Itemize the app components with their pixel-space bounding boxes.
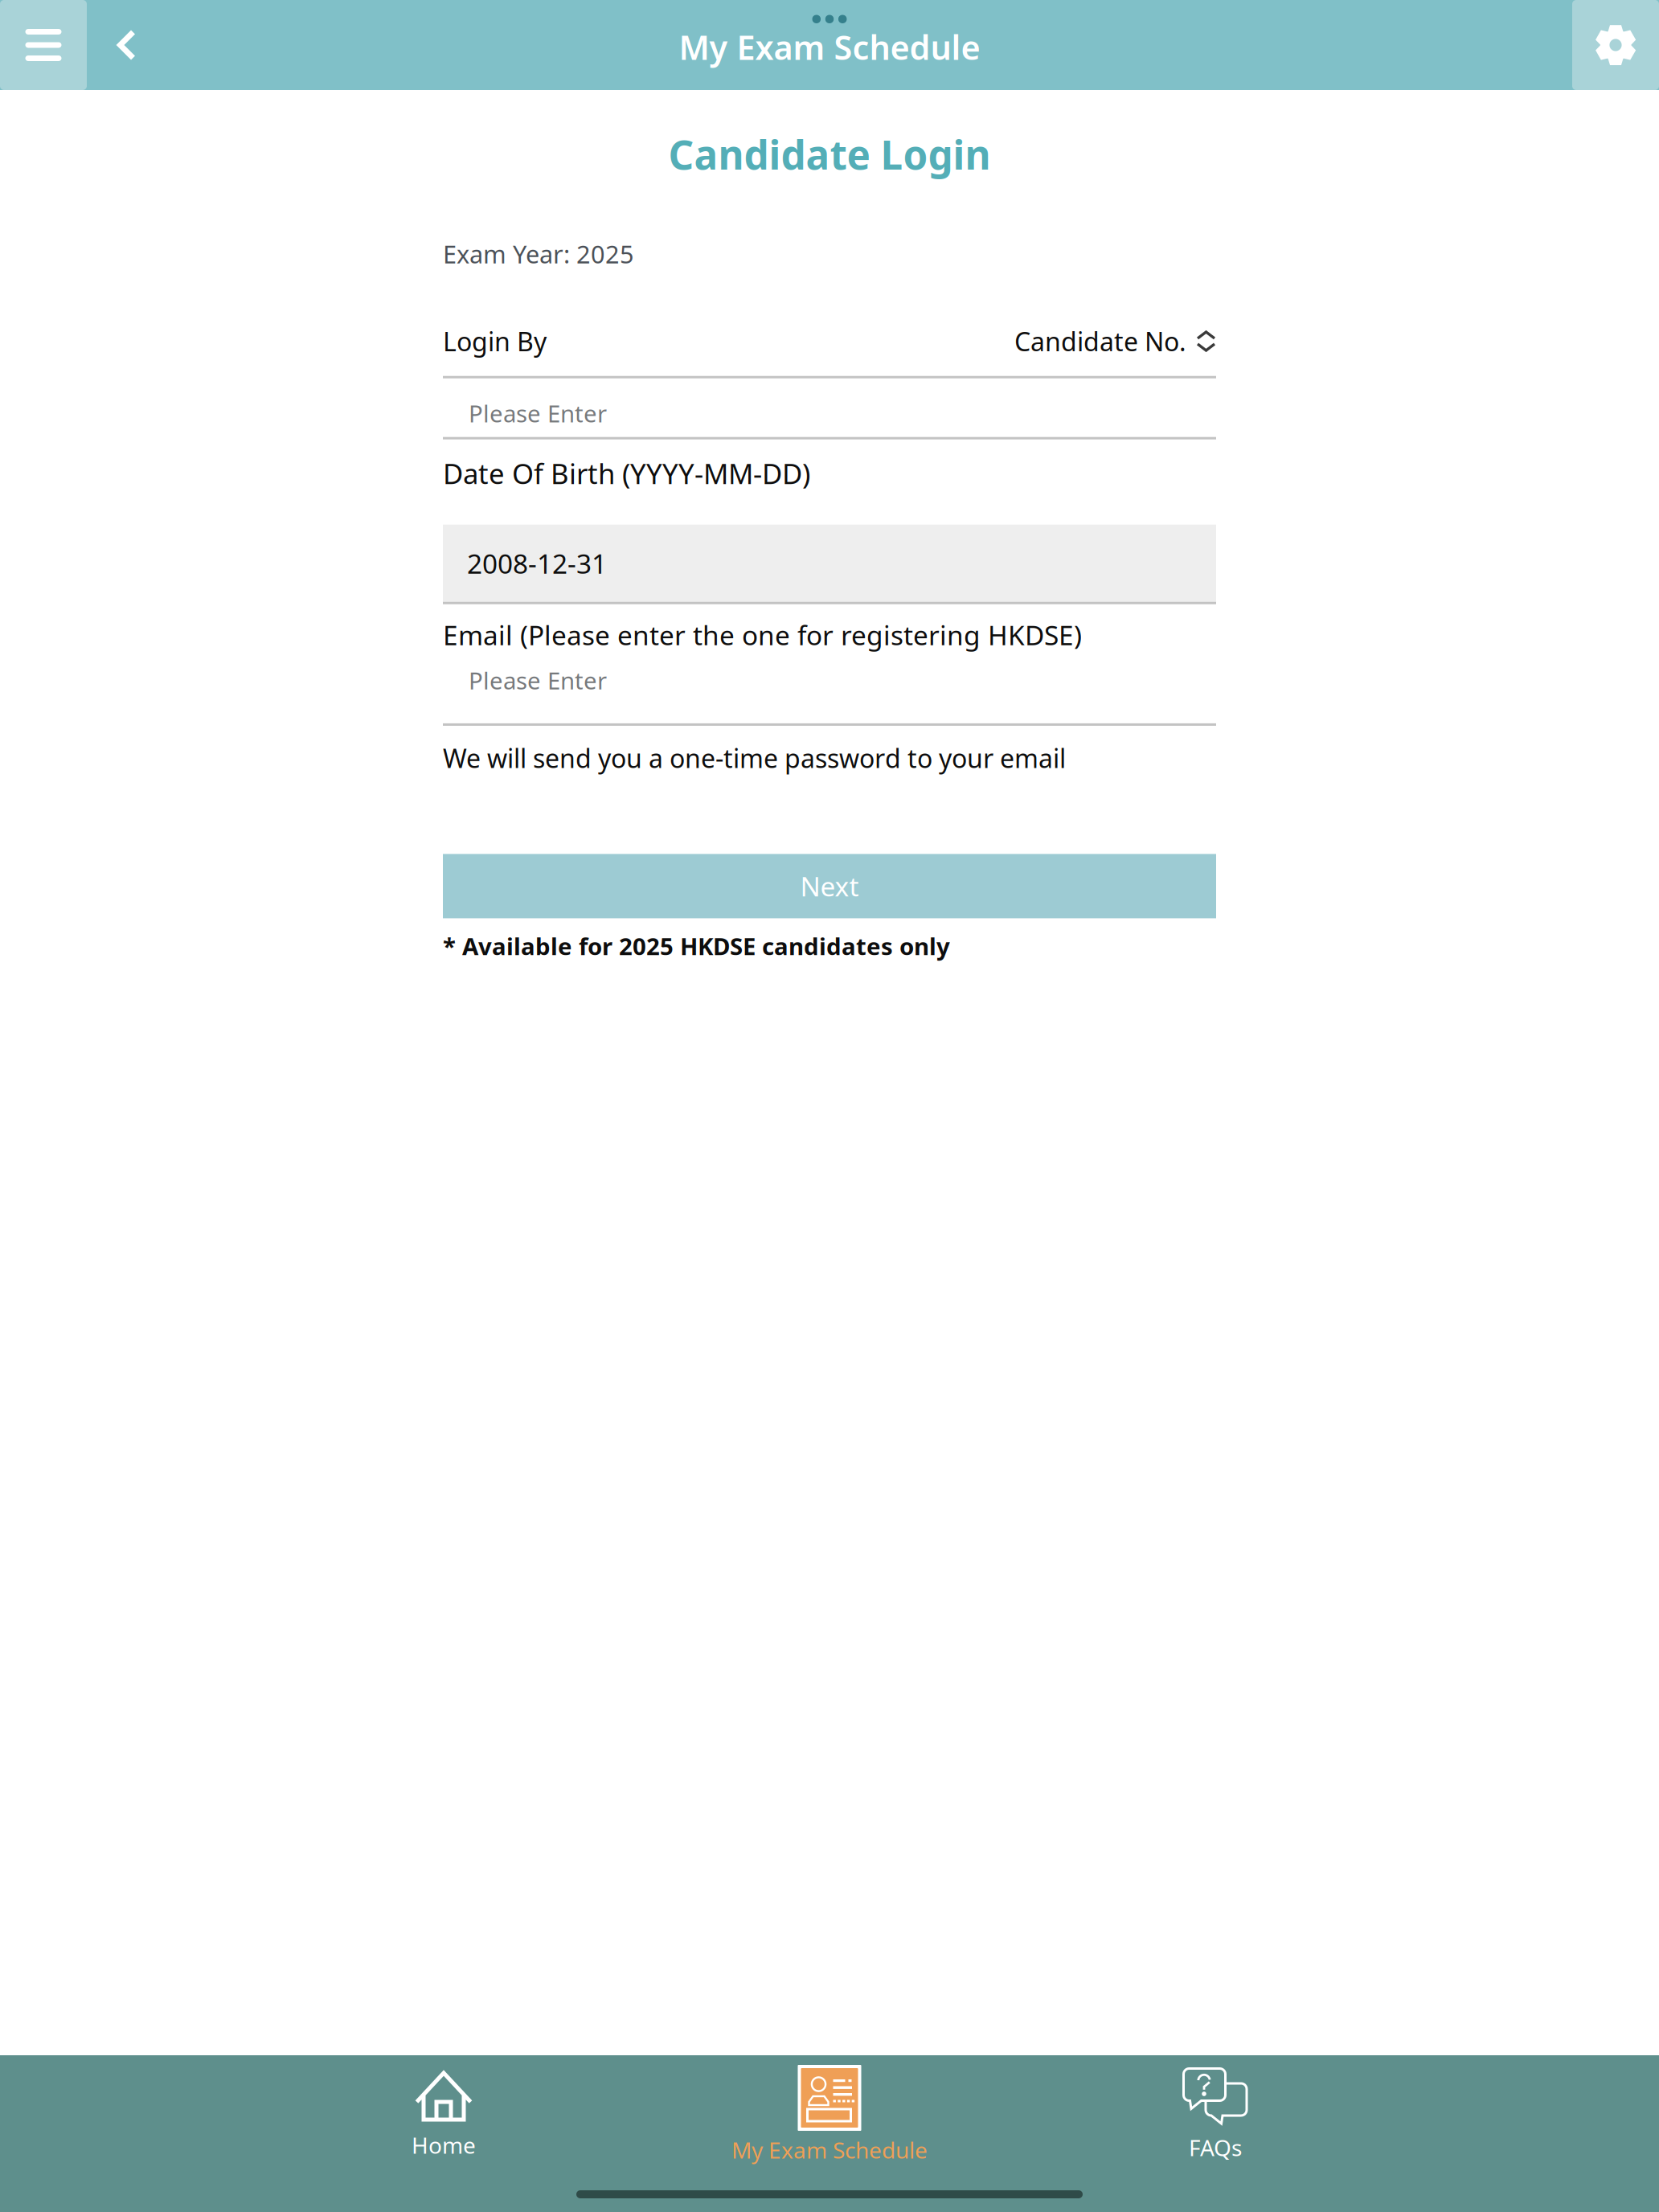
button[interactable]: Home xyxy=(251,2070,637,2160)
staticText: Please Enter xyxy=(469,665,607,696)
staticText: Candidate Login xyxy=(668,128,991,180)
staticText: * Available for 2025 HKDSE candidates on… xyxy=(443,930,950,962)
button[interactable]: Back xyxy=(87,0,175,90)
button[interactable]: Menu xyxy=(0,0,87,90)
staticText: My Exam Schedule xyxy=(731,2135,928,2165)
staticText: Candidate No. xyxy=(1014,324,1186,358)
button[interactable]: FAQs xyxy=(1022,2067,1408,2162)
button[interactable]: Please Enter xyxy=(443,665,1216,723)
staticText: Please Enter xyxy=(469,398,607,429)
button[interactable]: Next xyxy=(443,854,1216,918)
button[interactable]: Please Enter xyxy=(443,378,1216,437)
staticText: We will send you a one-time password to … xyxy=(443,741,1066,775)
staticText: Login By xyxy=(443,324,547,358)
button[interactable]: Candidate No. xyxy=(1014,324,1216,358)
staticText: 2008-12-31 xyxy=(467,545,607,581)
staticText: Home xyxy=(412,2130,476,2160)
staticText: Date Of Birth (YYYY-MM-DD) xyxy=(443,455,810,492)
staticText: FAQs xyxy=(1189,2132,1242,2162)
staticText: Email (Please enter the one for register… xyxy=(443,617,1082,653)
button[interactable]: My Exam Schedule xyxy=(637,2065,1022,2165)
staticText: Exam Year: 2025 xyxy=(443,238,634,270)
button[interactable]: Settings xyxy=(1572,0,1659,90)
staticText: My Exam Schedule xyxy=(679,25,980,69)
button[interactable]: 2008-12-31 xyxy=(443,525,1216,602)
staticText: Next xyxy=(800,868,859,904)
